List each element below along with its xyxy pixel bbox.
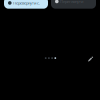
button[interactable]: Переглянути bbox=[51, 0, 96, 9]
button[interactable]: Compose bbox=[87, 56, 93, 62]
staticText: Перевернути с. bbox=[13, 0, 40, 6]
staticText: Переглянути bbox=[60, 0, 83, 4]
button[interactable]: Перевернути с. bbox=[4, 0, 48, 9]
